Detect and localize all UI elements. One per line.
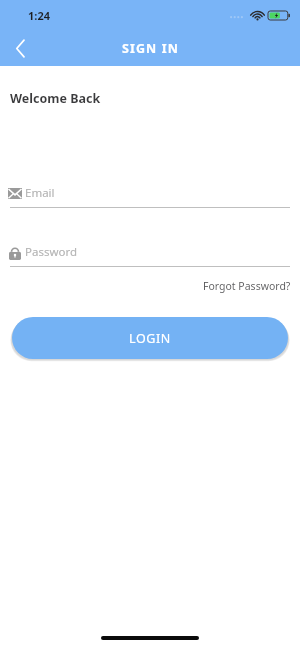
button[interactable]: Email	[0, 183, 300, 208]
staticText: LOGIN	[129, 330, 171, 347]
staticText: Forgot Password?	[203, 279, 291, 293]
button[interactable]: Back	[0, 30, 40, 66]
staticText: SIGN IN	[122, 40, 179, 57]
button[interactable]: LOGIN	[12, 317, 288, 359]
button[interactable]: Password	[0, 242, 300, 267]
button[interactable]: Forgot Password?	[194, 276, 300, 296]
staticText: Welcome Back	[10, 90, 101, 107]
staticText: Password	[25, 244, 78, 260]
staticText: 1:24	[28, 8, 50, 23]
staticText: Email	[25, 185, 55, 201]
